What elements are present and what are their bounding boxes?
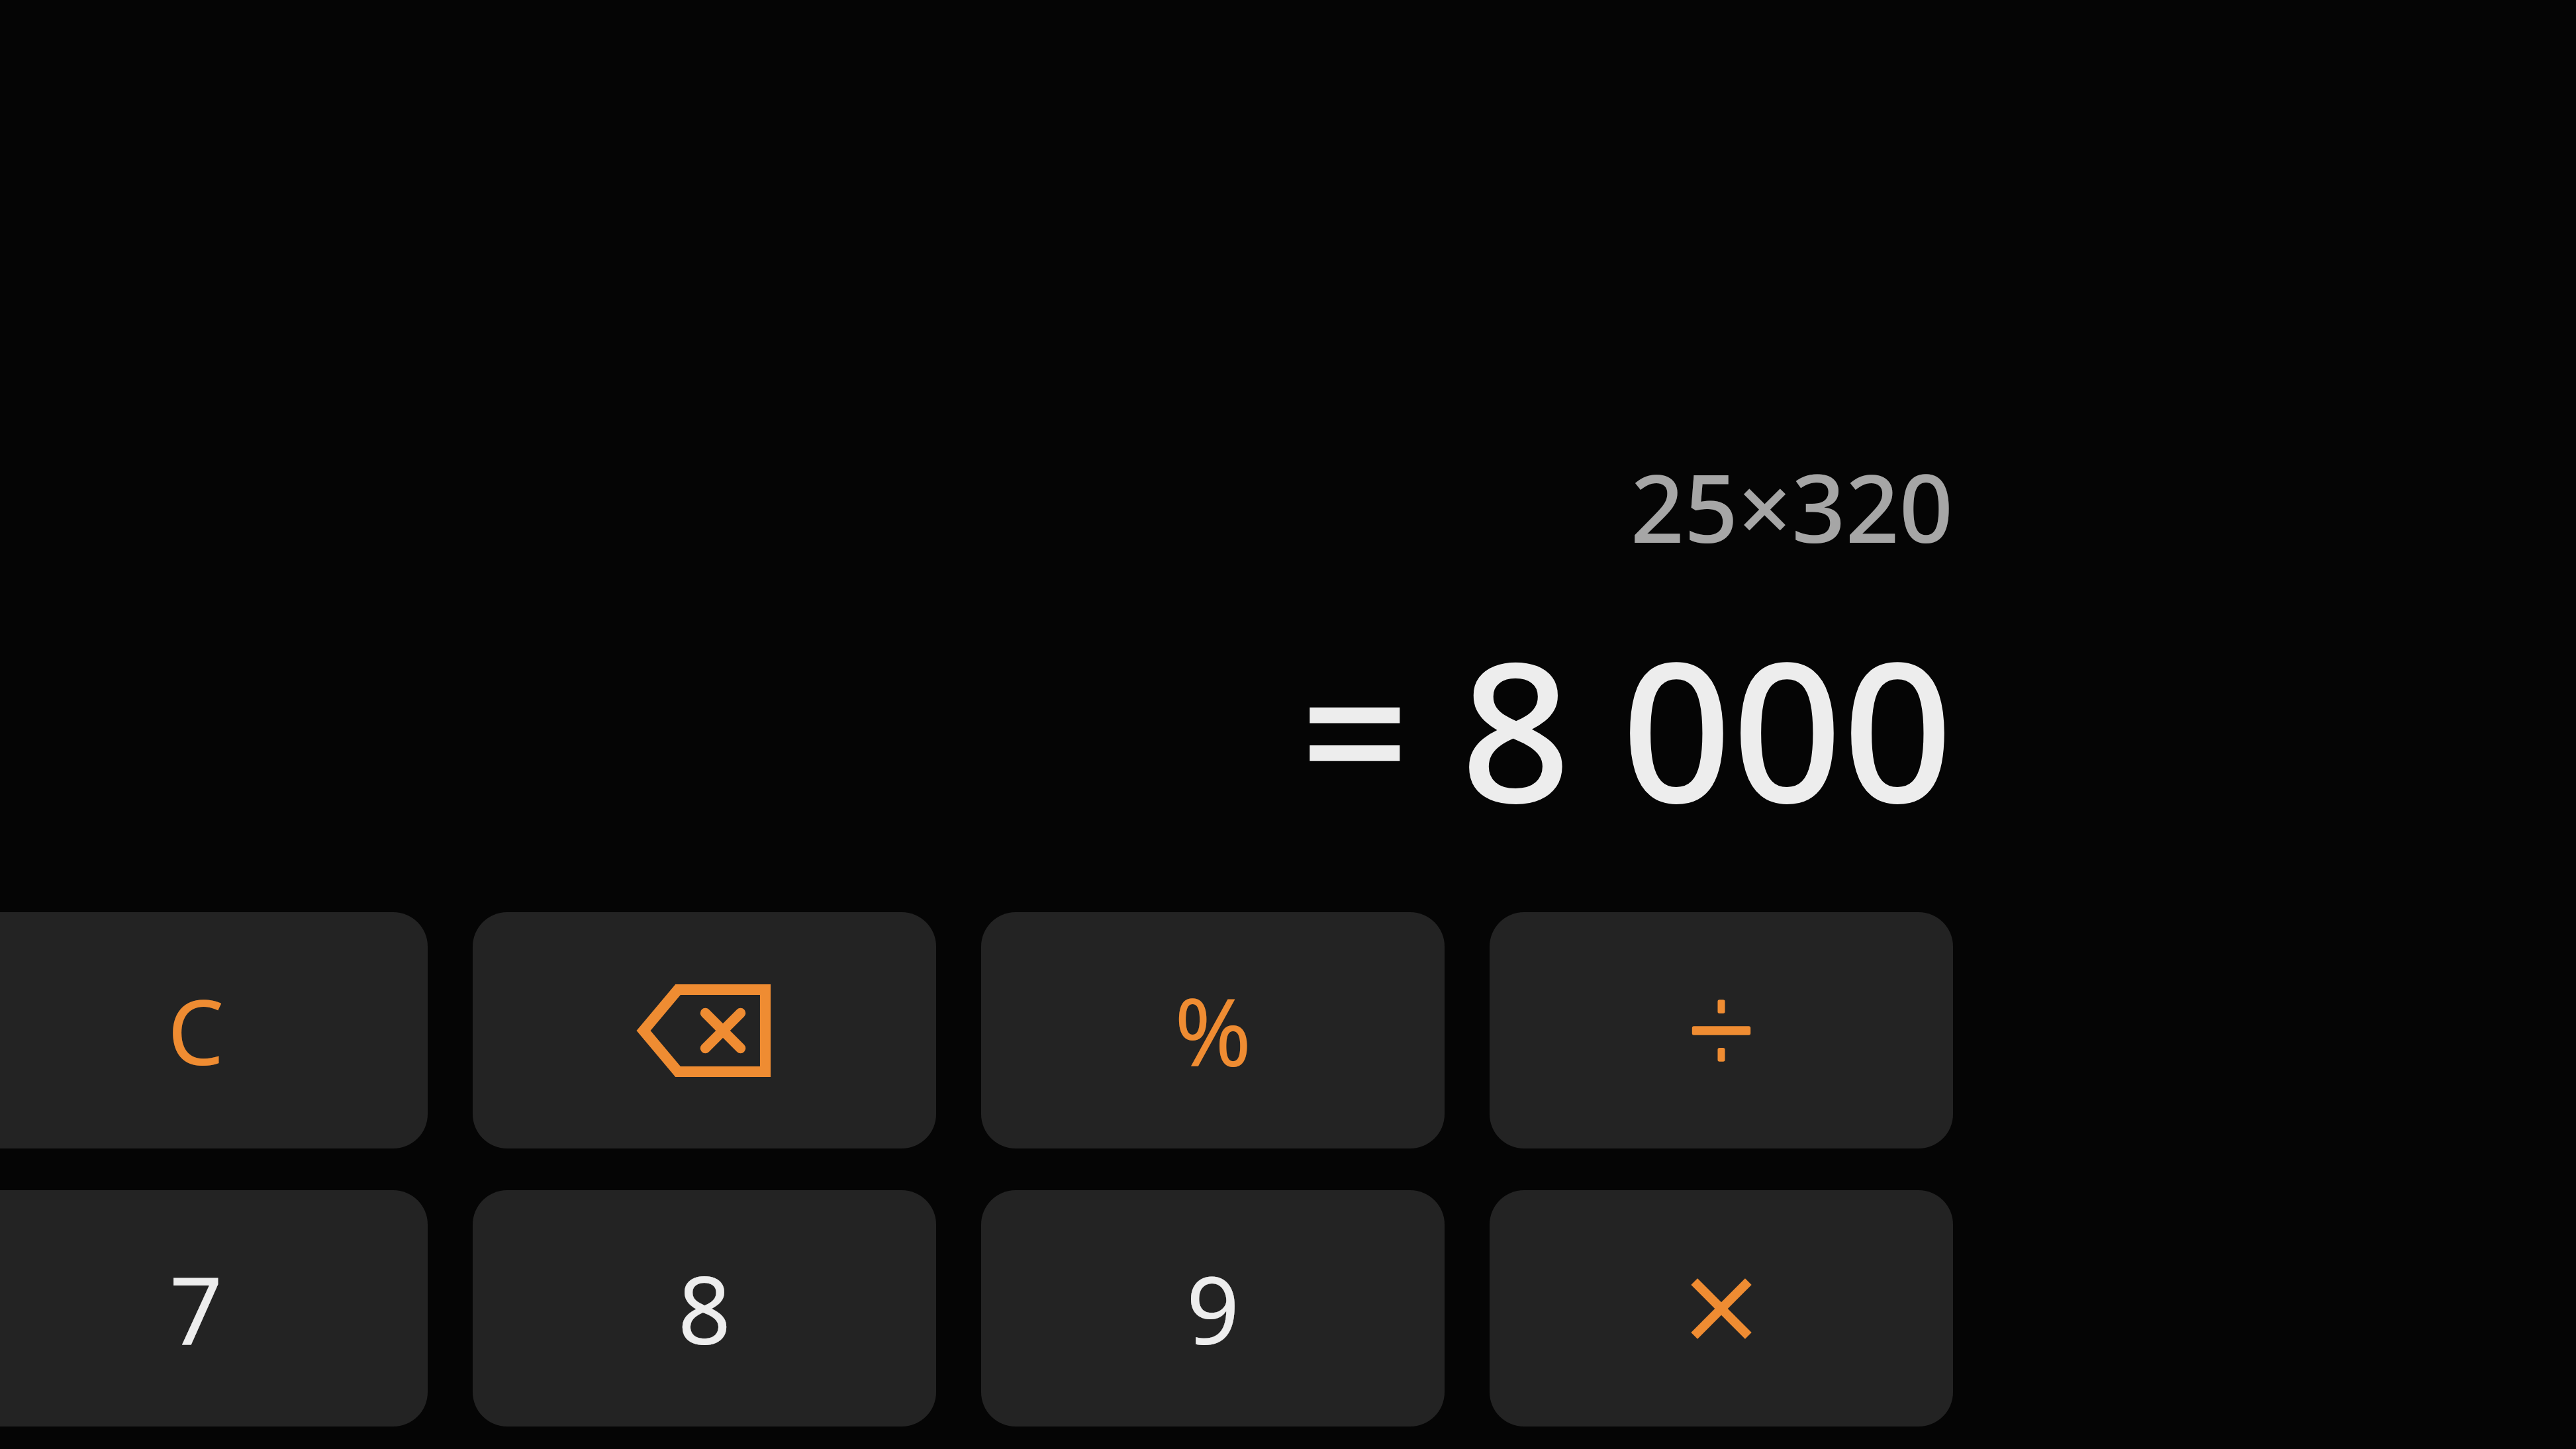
button[interactable]: Divide bbox=[1490, 912, 1953, 1148]
staticText: C bbox=[167, 970, 224, 1092]
button[interactable]: 9 bbox=[981, 1190, 1445, 1426]
button[interactable]: 8 bbox=[473, 1190, 936, 1426]
staticText: 8 bbox=[678, 1245, 732, 1372]
staticText: 9 bbox=[1186, 1245, 1240, 1372]
staticText: 7 bbox=[169, 1245, 223, 1372]
button[interactable]: Clear bbox=[0, 912, 428, 1148]
staticText: = 8 000 bbox=[1300, 596, 1953, 814]
button[interactable]: Backspace bbox=[473, 912, 936, 1148]
staticText: 25×320 bbox=[1630, 442, 1953, 568]
button[interactable]: 7 bbox=[0, 1190, 428, 1426]
staticText: % bbox=[1174, 967, 1252, 1094]
button[interactable]: Percent bbox=[981, 912, 1445, 1148]
button[interactable]: Multiply bbox=[1490, 1190, 1953, 1426]
